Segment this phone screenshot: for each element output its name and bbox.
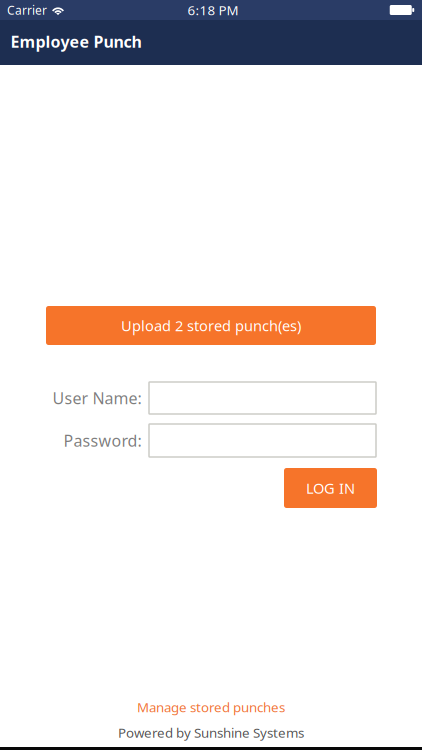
staticText: Password: [63, 430, 141, 451]
staticText: Powered by Sunshine Systems [118, 724, 304, 741]
button[interactable]: LOG IN [284, 468, 377, 508]
staticText: LOG IN [306, 478, 355, 498]
button[interactable]: Manage stored punches [121, 696, 301, 718]
staticText: Manage stored punches [137, 698, 285, 716]
staticText: Upload 2 stored punch(es) [121, 316, 301, 335]
button[interactable]: User Name [149, 382, 376, 414]
staticText: Employee Punch [10, 31, 141, 52]
staticText: User Name: [52, 387, 141, 409]
staticText: Carrier [7, 2, 47, 18]
staticText: 6:18 PM [187, 1, 238, 19]
button[interactable]: Password [149, 424, 376, 457]
button[interactable]: Upload 2 stored punch(es) [46, 306, 376, 345]
